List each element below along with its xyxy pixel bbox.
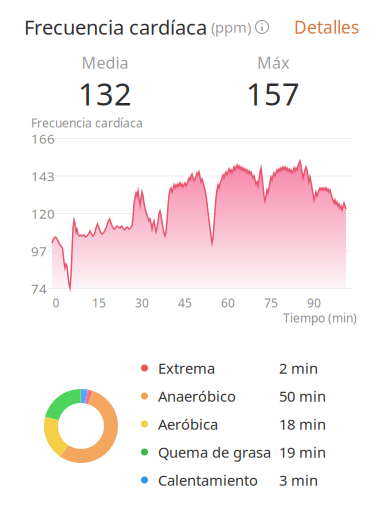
staticText: Tiempo (min)	[283, 310, 357, 326]
staticText: 120	[31, 205, 55, 222]
staticText: 90	[307, 295, 321, 311]
staticText: Quema de grasa	[158, 442, 271, 462]
staticText: 166	[31, 130, 55, 147]
staticText: Anaeróbico	[158, 386, 236, 406]
staticText: 50 min	[279, 386, 326, 406]
staticText: 75	[264, 295, 278, 311]
staticText: Máx	[257, 52, 289, 73]
staticText: 0	[52, 295, 59, 311]
staticText: Frecuencia cardíaca	[31, 115, 143, 131]
staticText: 18 min	[279, 414, 326, 434]
button[interactable]: Anaeróbico	[140, 382, 355, 410]
staticText: 15	[92, 295, 106, 311]
staticText: 60	[221, 295, 235, 311]
staticText: Media	[81, 52, 128, 73]
staticText: Aeróbica	[158, 414, 218, 434]
staticText: 132	[78, 73, 132, 114]
staticText: 97	[31, 242, 47, 260]
button[interactable]: Detalles	[292, 12, 361, 41]
staticText: Extrema	[158, 358, 215, 378]
staticText: Calentamiento	[158, 470, 258, 490]
staticText: 45	[178, 295, 192, 311]
staticText: (ppm)	[207, 17, 251, 37]
staticText: 74	[31, 280, 47, 297]
staticText: 30	[135, 295, 149, 311]
button[interactable]: Quema de grasa	[140, 438, 355, 466]
staticText: Detalles	[294, 15, 359, 38]
staticText: 2 min	[279, 358, 318, 378]
staticText: 19 min	[279, 442, 326, 462]
staticText: 143	[31, 167, 55, 185]
staticText: Frecuencia cardíaca	[24, 14, 207, 40]
button[interactable]: Extrema	[140, 354, 355, 382]
button[interactable]: Calentamiento	[140, 466, 355, 494]
staticText: 157	[246, 73, 300, 114]
button[interactable]: Aeróbica	[140, 410, 355, 438]
staticText: 3 min	[279, 470, 318, 490]
